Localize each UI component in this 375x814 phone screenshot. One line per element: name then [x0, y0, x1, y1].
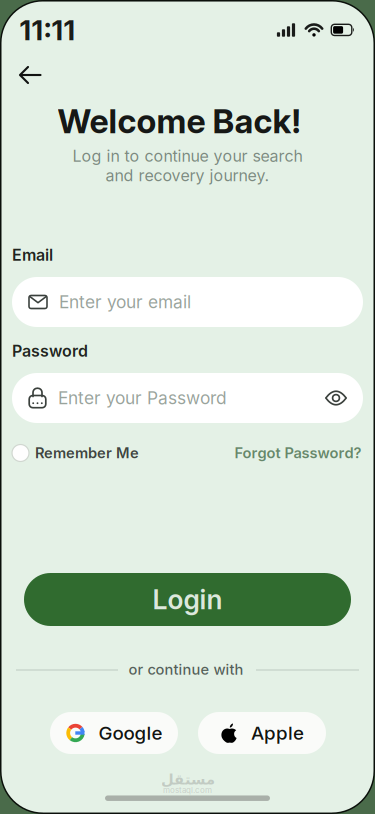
staticText: Enter your Password [58, 388, 227, 408]
staticText: 11:11 [19, 13, 75, 46]
staticText: Password [12, 342, 88, 360]
staticText: Welcome Back! [57, 101, 300, 141]
button[interactable]: Login [24, 573, 351, 626]
staticText: Login [152, 584, 222, 615]
button[interactable]: Google [50, 712, 178, 754]
staticText: Forgot Password? [234, 444, 361, 462]
button[interactable]: Remember Me [12, 444, 139, 462]
staticText: Google [98, 722, 162, 744]
button[interactable]: Forgot Password? [234, 444, 361, 462]
button[interactable]: Enter your Password [12, 373, 363, 423]
button[interactable]: Back [10, 57, 50, 93]
staticText: Apple [251, 722, 304, 744]
staticText: Remember Me [35, 444, 139, 462]
button[interactable]: Enter your email [12, 277, 363, 327]
staticText: Log in to continue your search [72, 147, 302, 165]
staticText: Email [12, 246, 53, 264]
button[interactable]: Show password [319, 378, 353, 418]
staticText: Enter your email [59, 292, 191, 312]
staticText: mostaql.com [163, 785, 212, 795]
staticText: مستقل [160, 771, 214, 788]
staticText: or continue with [128, 661, 243, 678]
button[interactable]: Apple [198, 712, 326, 754]
staticText: and recovery journey. [105, 166, 269, 185]
